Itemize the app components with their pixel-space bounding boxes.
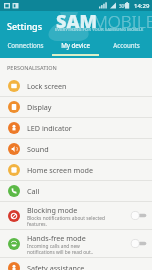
button[interactable]: Hands-free mode	[0, 230, 152, 258]
staticText: Display	[27, 102, 52, 112]
button[interactable]: Toggle switch, off	[131, 239, 147, 248]
staticText: 14:29	[134, 2, 150, 10]
button[interactable]: Connections	[0, 38, 50, 58]
button[interactable]: Safety assistance	[0, 258, 152, 270]
staticText: Blocks notifications about selected feat…	[27, 215, 105, 227]
staticText: Connections	[7, 41, 44, 49]
staticText: Hands-free mode	[27, 233, 86, 243]
staticText: Call	[27, 186, 40, 196]
staticText: Sound	[27, 144, 49, 154]
button[interactable]: Display	[0, 97, 152, 118]
button[interactable]: LED indicator	[0, 118, 152, 139]
staticText: LED indicator	[27, 123, 72, 133]
button[interactable]: Accounts	[101, 38, 152, 58]
staticText: EVERYTHING FOR YOUR SAMSUNG MOBILE	[55, 27, 144, 33]
staticText: SAM	[56, 9, 97, 34]
staticText: Safety assistance	[27, 263, 85, 270]
button[interactable]: Toggle switch, off	[131, 211, 147, 220]
staticText: Incoming calls and new notifications wil…	[27, 243, 94, 255]
staticText: Lock screen	[27, 81, 67, 91]
staticText: Accounts	[113, 41, 140, 49]
button[interactable]: My device	[50, 38, 101, 58]
button[interactable]: Call	[0, 181, 152, 202]
button[interactable]: Blocking mode	[0, 202, 152, 230]
button[interactable]: Lock screen	[0, 76, 152, 97]
staticText: 30%	[119, 3, 128, 9]
button[interactable]: Home screen mode	[0, 160, 152, 181]
staticText: MOBILE	[93, 10, 152, 33]
staticText: My device	[61, 41, 90, 49]
staticText: Blocking mode	[27, 205, 78, 215]
button[interactable]: Sound	[0, 139, 152, 160]
staticText: PERSONALISATION	[7, 64, 57, 71]
button[interactable]: Settings	[7, 20, 43, 32]
staticText: Home screen mode	[27, 165, 93, 175]
